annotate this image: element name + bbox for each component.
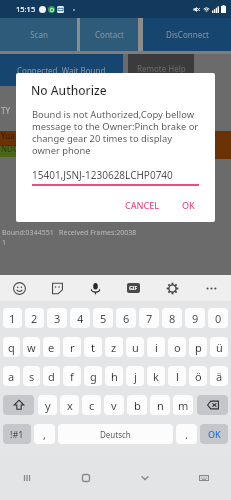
button[interactable]: n bbox=[150, 395, 170, 415]
staticText: y bbox=[45, 398, 51, 413]
button[interactable]: Deutsch bbox=[58, 424, 173, 444]
button[interactable]: Emoji bbox=[0, 275, 38, 301]
button[interactable]: ü bbox=[210, 337, 228, 357]
staticText: w bbox=[27, 340, 36, 355]
button[interactable]: Settings bbox=[153, 275, 192, 301]
button[interactable]: j bbox=[126, 366, 144, 386]
button[interactable]: More options bbox=[192, 275, 231, 301]
staticText: DisConnect bbox=[166, 29, 209, 40]
button[interactable]: Voice input bbox=[76, 275, 114, 301]
staticText: !#1 bbox=[10, 428, 24, 440]
staticText: q bbox=[8, 340, 15, 355]
button[interactable]: z bbox=[105, 337, 123, 357]
staticText: 1 bbox=[2, 238, 7, 248]
staticText: OK bbox=[208, 428, 221, 440]
button[interactable]: l bbox=[168, 366, 186, 386]
staticText: Bound:0344551 Received Frames:20038 bbox=[2, 228, 137, 238]
staticText: 2 bbox=[31, 311, 38, 326]
button[interactable]: v bbox=[104, 395, 124, 415]
button[interactable]: g bbox=[84, 366, 102, 386]
button[interactable]: c bbox=[82, 395, 101, 415]
button[interactable]: u bbox=[126, 337, 144, 357]
button[interactable]: Home bbox=[73, 465, 99, 491]
staticText: d bbox=[48, 369, 55, 384]
button[interactable]: . bbox=[176, 424, 197, 444]
staticText: p bbox=[195, 340, 202, 355]
button[interactable]: w bbox=[23, 337, 40, 357]
button[interactable]: q bbox=[3, 337, 20, 357]
button[interactable]: f bbox=[63, 366, 81, 386]
staticText: k bbox=[153, 369, 159, 384]
staticText: c bbox=[89, 398, 95, 413]
staticText: , bbox=[43, 427, 46, 442]
button[interactable]: GIF bbox=[114, 275, 153, 301]
staticText: ä bbox=[216, 369, 223, 384]
button[interactable]: Back bbox=[132, 465, 158, 491]
staticText: e bbox=[48, 340, 55, 355]
button[interactable]: 9 bbox=[185, 308, 205, 328]
button[interactable]: d bbox=[43, 366, 60, 386]
staticText: No Authorize bbox=[31, 82, 107, 98]
staticText: 6 bbox=[123, 311, 130, 326]
button[interactable]: b bbox=[127, 395, 147, 415]
button[interactable]: Backspace bbox=[197, 395, 228, 415]
button[interactable]: s bbox=[23, 366, 40, 386]
button[interactable]: Switch keyboard bbox=[191, 465, 217, 491]
button[interactable]: o bbox=[168, 337, 186, 357]
button[interactable]: a bbox=[3, 366, 20, 386]
staticText: l bbox=[176, 369, 179, 384]
button[interactable]: 3 bbox=[47, 308, 67, 328]
button[interactable]: Remote Help bbox=[128, 54, 194, 75]
button[interactable]: 5 bbox=[93, 308, 113, 328]
staticText: NDC bbox=[1, 143, 18, 154]
button[interactable]: p bbox=[189, 337, 207, 357]
staticText: v bbox=[111, 398, 117, 413]
button[interactable]: Shift bbox=[3, 395, 34, 415]
button[interactable]: ö bbox=[189, 366, 207, 386]
button[interactable]: e bbox=[43, 337, 60, 357]
staticText: o bbox=[174, 340, 181, 355]
staticText: ü bbox=[216, 340, 223, 355]
button[interactable]: Contact bbox=[80, 18, 138, 51]
button[interactable]: t bbox=[84, 337, 102, 357]
button[interactable]: x bbox=[60, 395, 79, 415]
staticText: x bbox=[67, 398, 73, 413]
staticText: b bbox=[134, 398, 141, 413]
button[interactable]: m bbox=[173, 395, 193, 415]
button[interactable]: i bbox=[147, 337, 165, 357]
button[interactable]: 2 bbox=[25, 308, 44, 328]
button[interactable]: r bbox=[63, 337, 81, 357]
button[interactable]: 0 bbox=[208, 308, 228, 328]
button[interactable]: DisConnect bbox=[143, 18, 231, 51]
staticText: GIF bbox=[129, 285, 138, 292]
button[interactable]: h bbox=[105, 366, 123, 386]
button[interactable]: k bbox=[147, 366, 165, 386]
button[interactable]: OK bbox=[178, 196, 199, 214]
button[interactable]: 1 bbox=[3, 308, 22, 328]
staticText: CANCEL bbox=[125, 199, 160, 211]
button[interactable]: 4 bbox=[70, 308, 90, 328]
button[interactable]: , bbox=[34, 424, 55, 444]
staticText: 9 bbox=[192, 311, 199, 326]
staticText: Deutsch bbox=[100, 429, 131, 440]
button[interactable]: Stickers bbox=[38, 275, 76, 301]
button[interactable]: Connected, Wait Bound bbox=[0, 54, 123, 86]
staticText: 4 bbox=[77, 311, 84, 326]
button[interactable]: y bbox=[38, 395, 57, 415]
button[interactable]: 8 bbox=[162, 308, 182, 328]
button[interactable]: 6 bbox=[116, 308, 136, 328]
button[interactable]: CANCEL bbox=[121, 196, 164, 214]
staticText: 5 bbox=[100, 311, 107, 326]
button[interactable]: Scan bbox=[0, 18, 77, 51]
button[interactable]: ä bbox=[210, 366, 228, 386]
staticText: . bbox=[185, 427, 188, 442]
button[interactable]: OK bbox=[200, 424, 228, 444]
staticText: Contact bbox=[95, 29, 124, 40]
staticText: h bbox=[111, 369, 118, 384]
button[interactable]: 7 bbox=[139, 308, 159, 328]
staticText: ö bbox=[195, 369, 202, 384]
staticText: s bbox=[29, 369, 35, 384]
button[interactable]: !#1 bbox=[3, 424, 31, 444]
staticText: m bbox=[178, 398, 189, 413]
button[interactable]: Recent apps bbox=[14, 465, 40, 491]
